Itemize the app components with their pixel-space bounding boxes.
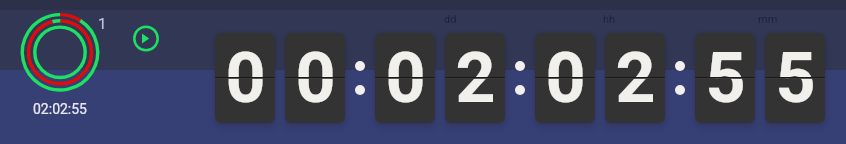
button[interactable]: 5 <box>695 33 755 123</box>
button[interactable]: 0 <box>535 33 595 123</box>
staticText: 5 <box>775 37 816 119</box>
staticText: dd <box>444 13 457 26</box>
button[interactable]: 2 <box>445 33 505 123</box>
staticText: 0 <box>545 37 586 119</box>
button[interactable]: 5 <box>765 33 825 123</box>
staticText: mm <box>758 13 778 26</box>
staticText: 2 <box>615 37 656 119</box>
staticText: 1 <box>98 15 107 31</box>
staticText: 0 <box>295 37 336 119</box>
button[interactable]: Timer progress <box>18 10 102 94</box>
button[interactable]: 2 <box>605 33 665 123</box>
button[interactable]: 0 <box>285 33 345 123</box>
staticText: 02:02:55 <box>33 101 87 116</box>
button[interactable]: 0 <box>215 33 275 123</box>
button[interactable]: Start timer <box>132 24 161 53</box>
staticText: hh <box>603 13 616 26</box>
staticText: 0 <box>225 37 266 119</box>
staticText: 0 <box>385 37 426 119</box>
staticText: 2 <box>455 37 496 119</box>
staticText: 5 <box>705 37 746 119</box>
button[interactable]: 0 <box>375 33 435 123</box>
